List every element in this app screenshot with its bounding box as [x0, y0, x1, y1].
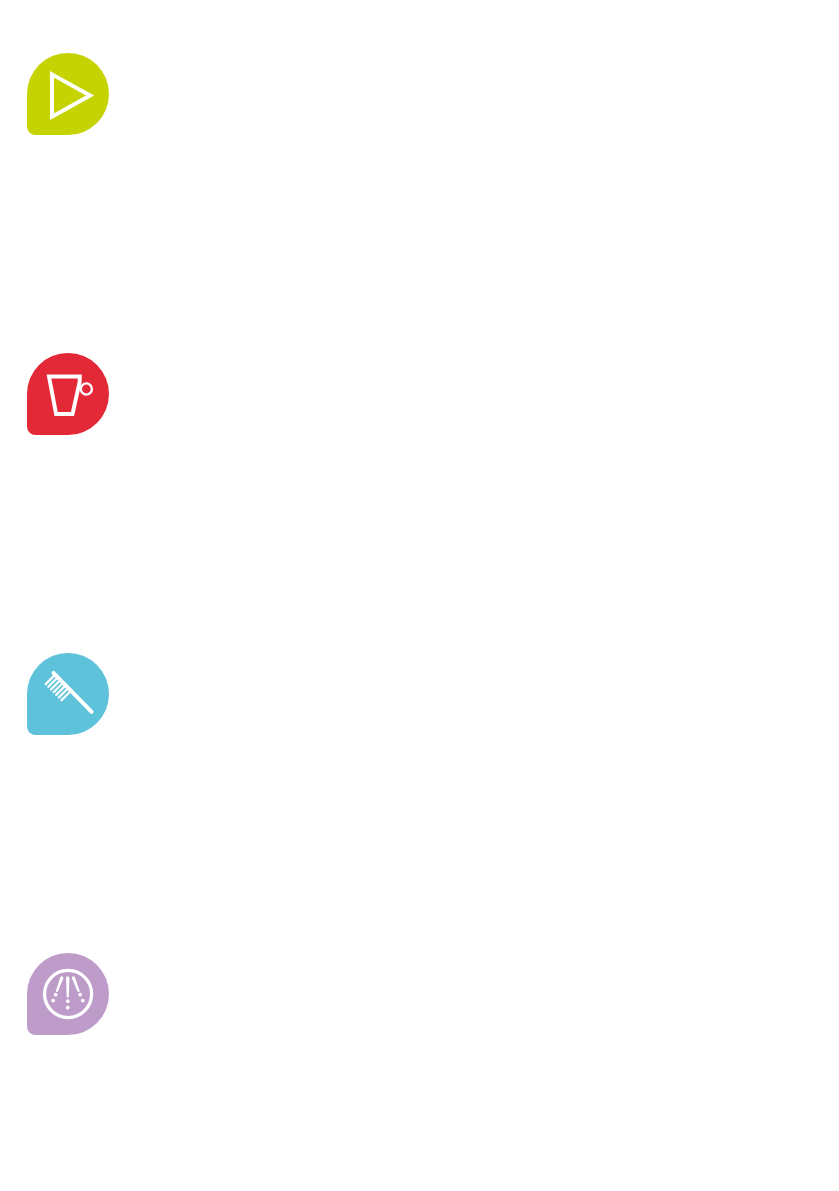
button[interactable]: Shower	[0, 900, 839, 1191]
button[interactable]: Coffee	[0, 300, 839, 600]
button[interactable]: Play	[0, 0, 839, 300]
button[interactable]: Hair	[0, 600, 839, 900]
